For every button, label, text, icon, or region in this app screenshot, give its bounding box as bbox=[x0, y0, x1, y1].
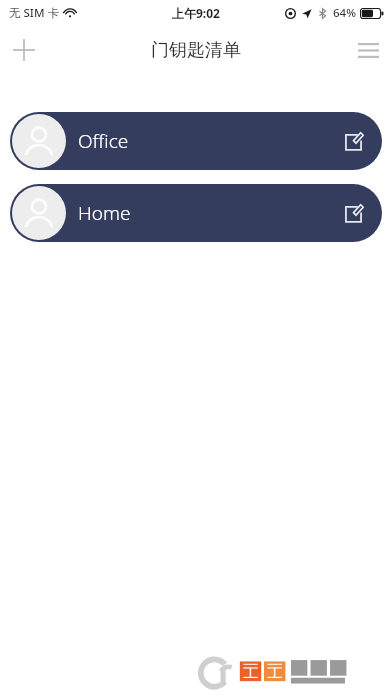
button[interactable]: Office bbox=[10, 112, 382, 170]
button[interactable]: Add key bbox=[4, 30, 44, 70]
button[interactable]: Menu bbox=[348, 30, 388, 70]
button[interactable]: Edit Office bbox=[336, 124, 370, 158]
staticText: Home bbox=[78, 200, 131, 226]
button[interactable]: Home bbox=[10, 184, 382, 242]
staticText: 无 SIM 卡 bbox=[9, 5, 59, 21]
staticText: 上午9:02 bbox=[172, 5, 220, 21]
staticText: 门钥匙清单 bbox=[151, 39, 241, 62]
staticText: 64% bbox=[333, 5, 356, 21]
staticText: Office bbox=[78, 128, 129, 154]
button[interactable]: Edit Home bbox=[336, 196, 370, 230]
